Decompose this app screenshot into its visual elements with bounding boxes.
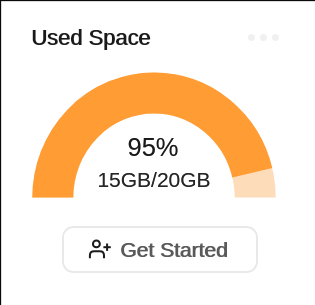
- staticText: 95%: [3, 133, 303, 161]
- staticText: 15GB/20GB: [4, 168, 304, 191]
- staticText: 15GB/20GB: [4, 168, 304, 191]
- staticText: Get Started: [121, 238, 229, 261]
- button[interactable]: [62, 226, 258, 273]
- staticText: Used Space: [31, 25, 151, 49]
- staticText: 95%: [3, 133, 303, 161]
- button[interactable]: More options: [244, 28, 282, 46]
- staticText: Used Space: [32, 25, 152, 49]
- staticText: Get Started: [120, 238, 228, 261]
